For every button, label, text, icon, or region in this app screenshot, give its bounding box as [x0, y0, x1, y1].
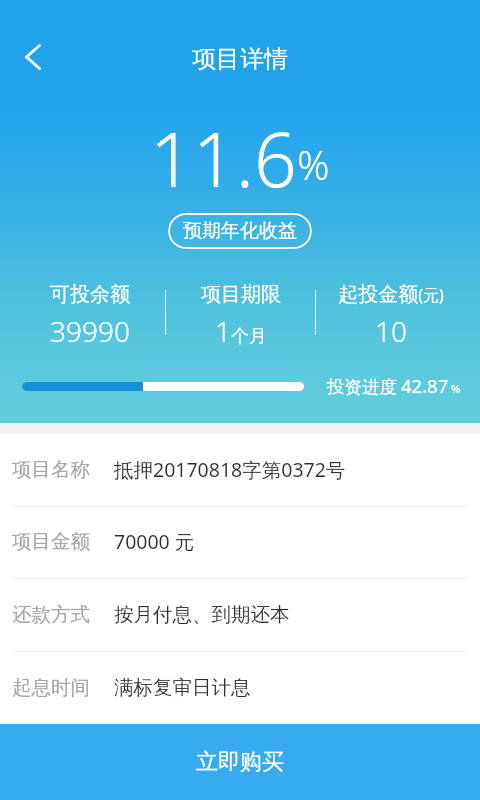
staticText: 项目详情	[0, 44, 480, 74]
staticText: 立即购买	[196, 748, 284, 776]
staticText: 39990	[50, 312, 130, 350]
button[interactable]: 预期年化收益	[168, 213, 312, 249]
staticText: 10	[375, 312, 407, 350]
button[interactable]: 还款方式	[0, 579, 480, 652]
button[interactable]: 立即购买	[0, 724, 480, 800]
staticText: 11.6	[150, 107, 297, 209]
staticText: 可投余额	[50, 282, 130, 307]
staticText: 抵押20170818字第0372号	[114, 456, 346, 483]
staticText: 预期年化收益	[183, 219, 297, 243]
button[interactable]: 项目金额	[0, 507, 480, 579]
staticText: 42.87	[401, 373, 449, 398]
staticText: 项目期限	[201, 282, 281, 307]
staticText: 起息时间	[12, 675, 90, 700]
button[interactable]: 起息时间	[0, 652, 480, 724]
staticText: 项目名称	[12, 457, 90, 482]
staticText: 1个月	[215, 312, 267, 350]
staticText: 按月付息、到期还本	[114, 602, 290, 627]
button[interactable]: 项目名称	[0, 434, 480, 507]
staticText: 项目金额	[12, 529, 90, 554]
staticText: 满标复审日计息	[114, 675, 251, 700]
staticText: 投资进度	[327, 376, 397, 398]
staticText: %	[451, 381, 461, 396]
button[interactable]: Back	[9, 33, 57, 81]
staticText: 还款方式	[12, 602, 90, 627]
staticText: 起投金额(元)	[338, 282, 444, 307]
staticText: %	[297, 137, 330, 191]
staticText: 70000 元	[114, 528, 195, 555]
